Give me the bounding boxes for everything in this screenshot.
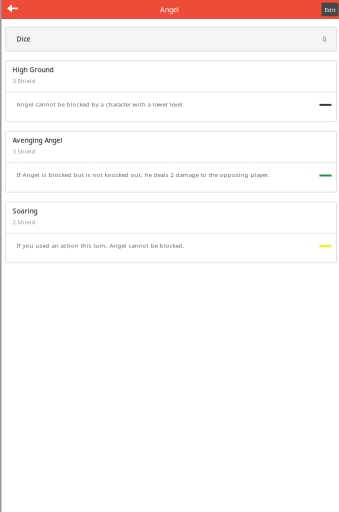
button[interactable]: Edit xyxy=(321,3,338,16)
staticText: Avenging Angel xyxy=(12,136,62,145)
button[interactable]: Soaring xyxy=(5,202,336,263)
staticText: High Ground xyxy=(12,65,53,74)
staticText: If you used an action this turn, Angel c… xyxy=(16,241,184,249)
staticText: If Angel is blocked but is not knocked o… xyxy=(16,171,269,179)
button[interactable]: Avenging Angel xyxy=(5,131,336,192)
button[interactable]: Dice xyxy=(5,27,336,51)
staticText: Soaring xyxy=(12,206,37,215)
staticText: Angel xyxy=(160,5,179,14)
button[interactable]: High Ground xyxy=(5,61,336,122)
button[interactable]: Back xyxy=(0,0,25,19)
staticText: 0 xyxy=(322,35,326,43)
staticText: 3 Shield xyxy=(12,147,35,155)
staticText: 3 Shield xyxy=(12,77,35,85)
staticText: Dice xyxy=(16,34,30,44)
staticText: 2 Shield xyxy=(12,218,35,226)
staticText: Edit xyxy=(324,5,335,14)
staticText: Angel cannot be blocked by a character w… xyxy=(16,100,184,108)
